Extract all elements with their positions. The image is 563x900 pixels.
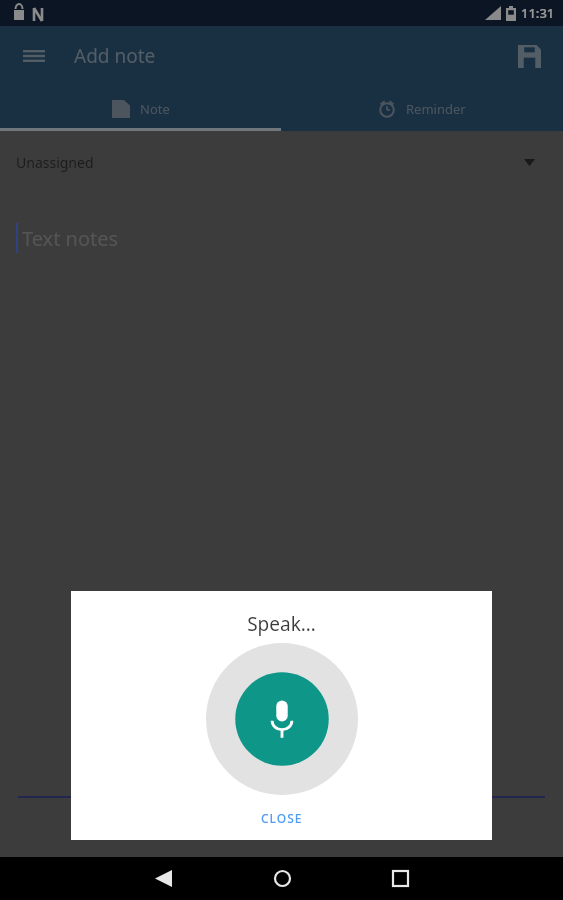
staticText: Unassigned [16, 153, 94, 172]
button[interactable]: Open navigation menu [10, 32, 58, 80]
button[interactable]: CLOSE [71, 796, 492, 840]
staticText: CLOSE [261, 810, 303, 826]
button[interactable]: Back [139, 857, 187, 900]
button[interactable]: Recent apps [376, 857, 424, 900]
button[interactable]: Home [258, 857, 306, 900]
button[interactable]: Start voice input [206, 643, 358, 795]
button[interactable]: Save note [505, 32, 553, 80]
staticText: Reminder [406, 100, 466, 118]
button[interactable]: Reminder [281, 86, 563, 131]
staticText: Text notes [22, 225, 119, 252]
staticText: 11:31 [521, 4, 555, 22]
button[interactable]: Note [0, 86, 281, 131]
staticText: Add note [74, 43, 156, 69]
staticText: Speak… [247, 611, 316, 637]
staticText: Note [140, 100, 170, 118]
